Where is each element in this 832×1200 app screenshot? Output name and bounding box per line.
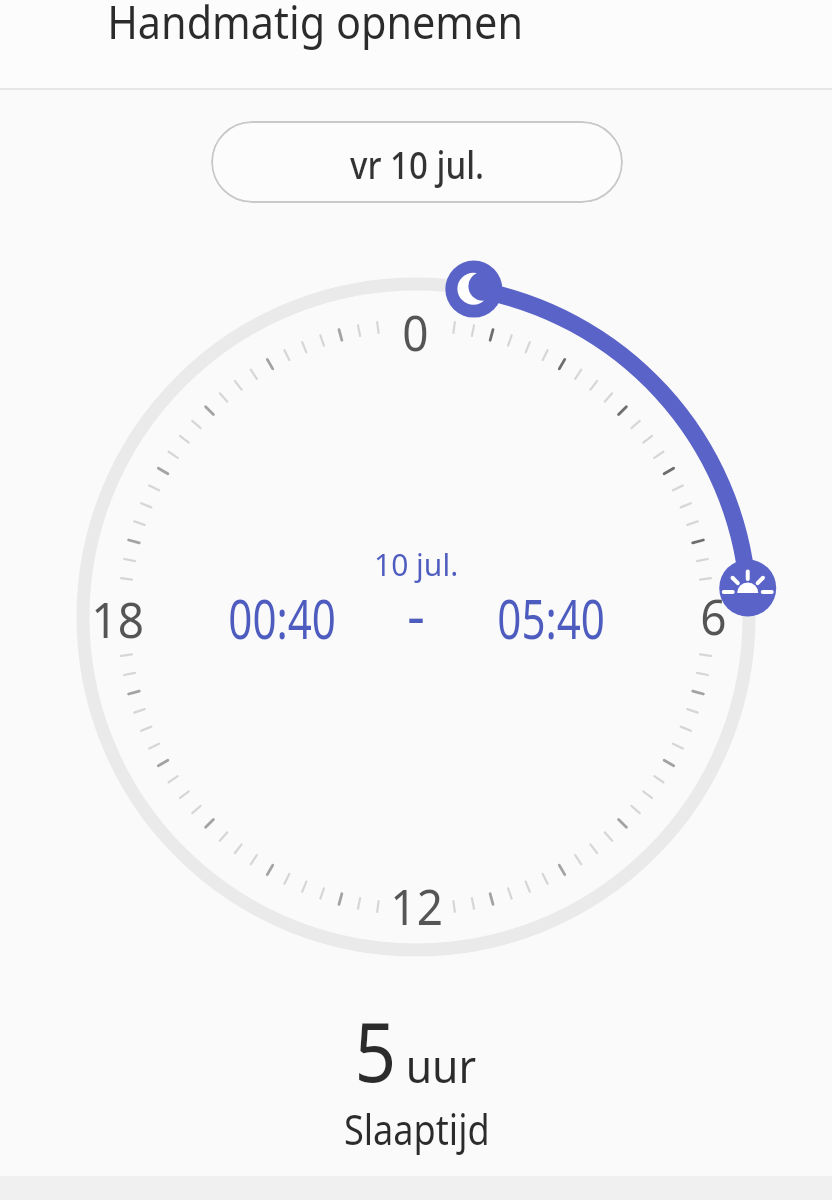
- button[interactable]: vr 10 jul.: [211, 121, 623, 203]
- staticText: 0: [402, 298, 429, 362]
- button[interactable]: 00:40: [132, 578, 432, 658]
- staticText: 18: [91, 585, 145, 649]
- staticText: Slaaptijd: [344, 1100, 490, 1157]
- button[interactable]: [718, 558, 778, 618]
- staticText: -: [407, 576, 426, 652]
- staticText: 12: [390, 872, 444, 936]
- staticText: uur: [406, 1034, 476, 1097]
- staticText: vr 10 jul.: [350, 138, 485, 190]
- staticText: 00:40: [228, 581, 337, 655]
- button[interactable]: 05:40: [401, 578, 701, 658]
- staticText: Handmatig opnemen: [107, 0, 524, 53]
- staticText: 10 jul.: [374, 544, 459, 585]
- staticText: 5: [355, 994, 396, 1106]
- staticText: 6: [700, 582, 727, 646]
- button[interactable]: [444, 259, 504, 319]
- staticText: 05:40: [497, 581, 606, 655]
